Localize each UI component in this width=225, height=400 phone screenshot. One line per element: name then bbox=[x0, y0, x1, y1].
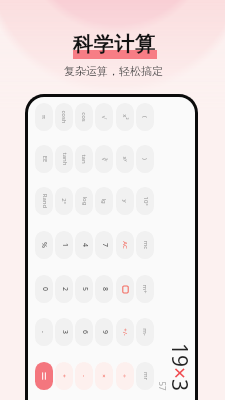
staticText: cos bbox=[80, 112, 88, 122]
staticText: . bbox=[39, 331, 49, 333]
staticText: 4 bbox=[79, 242, 89, 247]
button[interactable]: ( bbox=[136, 103, 154, 131]
button[interactable]: 0 bbox=[35, 275, 53, 303]
button[interactable]: 6 bbox=[75, 318, 93, 346]
staticText: ) bbox=[141, 158, 149, 160]
staticText: 1 bbox=[59, 242, 69, 247]
staticText: m+ bbox=[141, 284, 149, 294]
button[interactable]: . bbox=[35, 318, 53, 346]
button[interactable]: AC bbox=[116, 231, 134, 259]
staticText: Rand bbox=[40, 193, 48, 208]
staticText: mc bbox=[141, 240, 149, 249]
staticText: 19×3 bbox=[168, 343, 194, 392]
staticText: cosh bbox=[60, 110, 68, 124]
staticText: 9 bbox=[99, 329, 109, 334]
staticText: 10ˣ bbox=[141, 196, 149, 205]
button[interactable] bbox=[35, 362, 53, 390]
button[interactable]: × bbox=[95, 362, 113, 390]
staticText: log bbox=[80, 196, 88, 205]
button[interactable]: + bbox=[55, 362, 73, 390]
staticText: + bbox=[60, 374, 68, 378]
button[interactable]: tanh bbox=[55, 145, 73, 173]
button[interactable]: Rand bbox=[35, 187, 53, 215]
button[interactable]: π bbox=[35, 103, 53, 131]
button[interactable]: mc bbox=[136, 231, 154, 259]
button[interactable]: log bbox=[75, 187, 93, 215]
button[interactable]: 10ˣ bbox=[136, 187, 154, 215]
staticText: ÷ bbox=[121, 374, 129, 378]
button[interactable]: m- bbox=[136, 318, 154, 346]
staticText: lg bbox=[100, 198, 108, 204]
button[interactable]: tan bbox=[75, 145, 93, 173]
staticText: π bbox=[40, 115, 48, 119]
button[interactable]: m+ bbox=[136, 275, 154, 303]
staticText: y bbox=[121, 199, 129, 203]
staticText: x² bbox=[121, 114, 129, 120]
staticText: 复杂运算，轻松搞定 bbox=[64, 64, 163, 78]
staticText: EE bbox=[40, 155, 48, 162]
button[interactable]: 3 bbox=[55, 318, 73, 346]
button[interactable]: x² bbox=[116, 103, 134, 131]
button[interactable]: xʸ bbox=[116, 145, 134, 173]
staticText: × bbox=[100, 374, 108, 378]
button[interactable]: ∛ bbox=[95, 145, 113, 173]
button[interactable]: EE bbox=[35, 145, 53, 173]
staticText: 2ˣ bbox=[60, 198, 68, 204]
staticText: +/- bbox=[121, 328, 129, 336]
button[interactable]: % bbox=[35, 231, 53, 259]
staticText: % bbox=[39, 242, 49, 248]
button[interactable]: +/- bbox=[116, 318, 134, 346]
button[interactable]: cos bbox=[75, 103, 93, 131]
button[interactable]: cosh bbox=[55, 103, 73, 131]
button[interactable]: mr bbox=[136, 362, 154, 390]
staticText: 8 bbox=[99, 286, 109, 291]
staticText: xʸ bbox=[121, 156, 129, 162]
staticText: AC bbox=[121, 241, 129, 249]
staticText: mr bbox=[141, 371, 149, 380]
button[interactable]: 1 bbox=[55, 231, 73, 259]
staticText: tanh bbox=[60, 152, 68, 165]
staticText: tan bbox=[80, 154, 88, 164]
staticText: 5 bbox=[79, 286, 89, 291]
staticText: 6 bbox=[79, 329, 89, 334]
staticText: 7 bbox=[99, 242, 109, 247]
button[interactable]: - bbox=[75, 362, 93, 390]
button[interactable]: 5 bbox=[75, 275, 93, 303]
button[interactable]: ) bbox=[136, 145, 154, 173]
button[interactable]: ÷ bbox=[116, 362, 134, 390]
button[interactable]: 8 bbox=[95, 275, 113, 303]
staticText: - bbox=[80, 375, 88, 377]
staticText: 57 bbox=[156, 381, 167, 391]
staticText: 3 bbox=[59, 329, 69, 334]
button[interactable]: 2ˣ bbox=[55, 187, 73, 215]
button[interactable]: √ bbox=[95, 103, 113, 131]
button[interactable]: Delete bbox=[116, 275, 134, 303]
staticText: 0 bbox=[39, 286, 49, 291]
button[interactable]: 9 bbox=[95, 318, 113, 346]
staticText: 2 bbox=[59, 286, 69, 291]
staticText: ( bbox=[141, 116, 149, 118]
staticText: ∛ bbox=[100, 157, 107, 161]
button[interactable]: y bbox=[116, 187, 134, 215]
button[interactable]: 4 bbox=[75, 231, 93, 259]
button[interactable]: 2 bbox=[55, 275, 73, 303]
staticText: √ bbox=[100, 115, 107, 119]
staticText: m- bbox=[141, 328, 149, 336]
staticText: 科学计算 bbox=[73, 32, 156, 57]
button[interactable]: 7 bbox=[95, 231, 113, 259]
button[interactable]: lg bbox=[95, 187, 113, 215]
